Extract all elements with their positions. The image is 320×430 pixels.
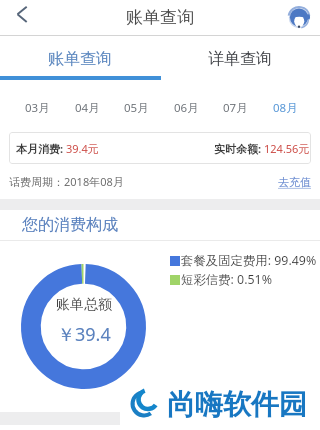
button[interactable]: 08月 (273, 95, 298, 111)
staticText: 04月 (75, 100, 100, 116)
button[interactable]: 账单查询 (0, 36, 160, 81)
staticText: 话费周期：2018年08月 (9, 174, 124, 189)
staticText: 05月 (124, 100, 149, 116)
button[interactable]: 07月 (223, 95, 248, 111)
button[interactable]: 04月 (75, 95, 100, 111)
button[interactable]: 05月 (124, 95, 149, 111)
staticText: 124.56元 (264, 141, 310, 156)
staticText: 本月消费: (16, 141, 66, 156)
button[interactable]: 06月 (174, 95, 199, 111)
staticText: 08月 (273, 100, 298, 116)
staticText: 39.4元 (66, 141, 99, 156)
button[interactable]: Back (8, 6, 32, 30)
staticText: 账单查询 (48, 49, 112, 69)
staticText: 短彩信费: 0.51% (181, 271, 272, 288)
button[interactable]: 03月 (25, 95, 50, 111)
staticText: 06月 (174, 100, 199, 116)
staticText: 尚嗨软件园 (167, 387, 307, 422)
staticText: 07月 (223, 100, 248, 116)
staticText: 账单查询 (126, 7, 194, 28)
button[interactable]: 详单查询 (160, 36, 320, 81)
staticText: 您的消费构成 (22, 215, 118, 235)
staticText: 03月 (25, 100, 50, 116)
staticText: 实时余额: (214, 141, 264, 156)
staticText: 去充值 (278, 175, 311, 189)
button[interactable]: Customer service (287, 6, 311, 30)
staticText: 详单查询 (208, 49, 272, 69)
staticText: 套餐及固定费用: 99.49% (181, 252, 317, 269)
staticText: 账单总额 (56, 296, 112, 314)
button[interactable]: 去充值 (278, 175, 311, 189)
staticText: ￥39.4 (57, 322, 111, 347)
